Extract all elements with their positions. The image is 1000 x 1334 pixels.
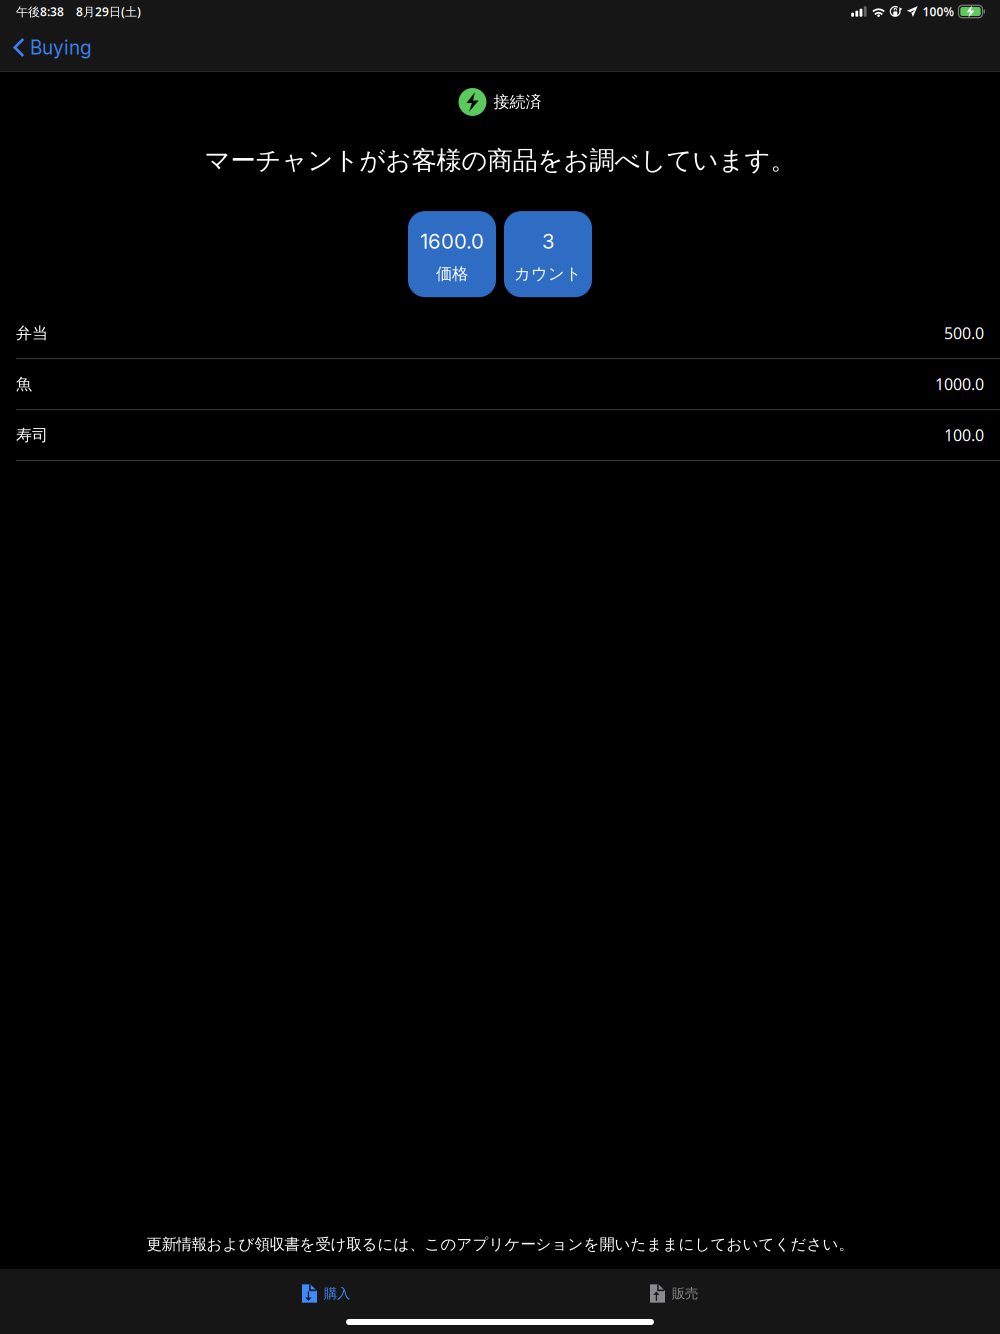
staticText: 販売: [672, 1285, 698, 1302]
staticText: 午後8:38 8月29日(土): [16, 3, 141, 19]
staticText: 3: [542, 229, 554, 254]
staticText: 500.0: [944, 322, 984, 344]
staticText: カウント: [514, 264, 582, 284]
button[interactable]: 魚: [0, 359, 1000, 409]
button[interactable]: 弁当: [0, 308, 1000, 358]
staticText: 購入: [324, 1285, 350, 1302]
staticText: マーチャントがお客様の商品をお調べしています。: [204, 145, 795, 176]
staticText: 接続済: [493, 92, 541, 112]
staticText: 更新情報および領収書を受け取るには、このアプリケーションを開いたままにしておいて…: [146, 1234, 853, 1254]
staticText: 寿司: [16, 425, 48, 445]
staticText: 100%: [922, 3, 954, 19]
staticText: 1000.0: [935, 373, 984, 395]
staticText: 弁当: [16, 323, 48, 343]
button[interactable]: 購入: [288, 1271, 364, 1315]
staticText: 価格: [436, 264, 468, 284]
staticText: 1600.0: [420, 229, 484, 254]
staticText: Buying: [30, 36, 92, 59]
button[interactable]: Buying: [0, 26, 102, 68]
button[interactable]: 寿司: [0, 410, 1000, 460]
staticText: 100.0: [944, 424, 984, 446]
staticText: 魚: [16, 374, 32, 394]
button[interactable]: 販売: [636, 1271, 712, 1315]
